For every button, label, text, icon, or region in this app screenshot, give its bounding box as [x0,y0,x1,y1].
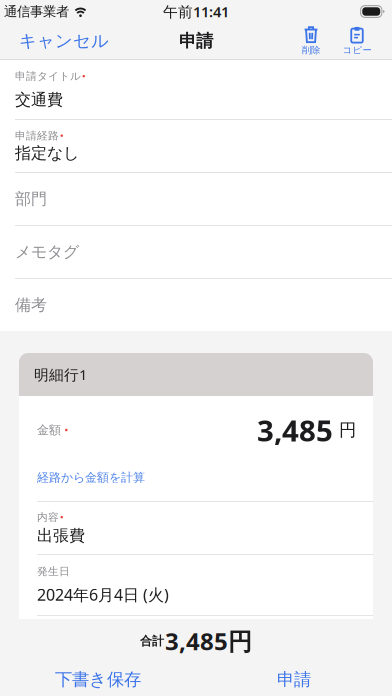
staticText: 明細行1 [34,365,87,384]
staticText: 申請タイトル [15,70,81,83]
staticText: 合計 [140,634,164,648]
button[interactable]: 経路から金額を計算 [19,454,151,501]
staticText: 円 [339,419,356,441]
button[interactable]: 下書き保存 [0,663,196,696]
staticText: 2024年6月4日 (火) [37,584,169,605]
button[interactable]: 削除 [291,23,331,59]
staticText: 部門 [15,189,47,209]
button[interactable]: キャンセル [0,23,121,59]
staticText: 削除 [302,44,320,56]
button[interactable]: 申請タイトル [0,60,392,120]
staticText: 下書き保存 [55,669,141,690]
staticText: 金額 [37,423,61,437]
button[interactable]: 備考 [0,279,392,331]
staticText: 通信事業者 [4,3,69,20]
staticText: 3,485円 [165,625,252,657]
staticText: コピー [342,44,371,56]
staticText: 内容 [37,511,59,524]
staticText: 指定なし [15,143,79,163]
button[interactable]: 発生日 [19,555,373,616]
button[interactable]: 申請 [196,663,392,696]
button[interactable]: メモタグ [0,226,392,279]
staticText: 申請経路 [15,129,59,142]
staticText: キャンセル [19,30,109,52]
staticText: 3,485 [257,410,333,449]
staticText: 出張費 [37,526,85,545]
staticText: 午前11:41 [163,2,229,21]
button[interactable]: 部門 [0,173,392,226]
button[interactable]: 内容 [19,502,373,555]
staticText: 備考 [15,295,47,315]
staticText: メモタグ [15,242,79,262]
staticText: 交通費 [15,90,63,109]
staticText: 申請 [277,669,311,690]
button[interactable]: コピー [337,23,377,59]
staticText: 申請 [179,30,213,52]
button[interactable]: 申請経路 [0,120,392,173]
staticText: 経路から金額を計算 [37,470,145,485]
staticText: 発生日 [37,565,70,578]
